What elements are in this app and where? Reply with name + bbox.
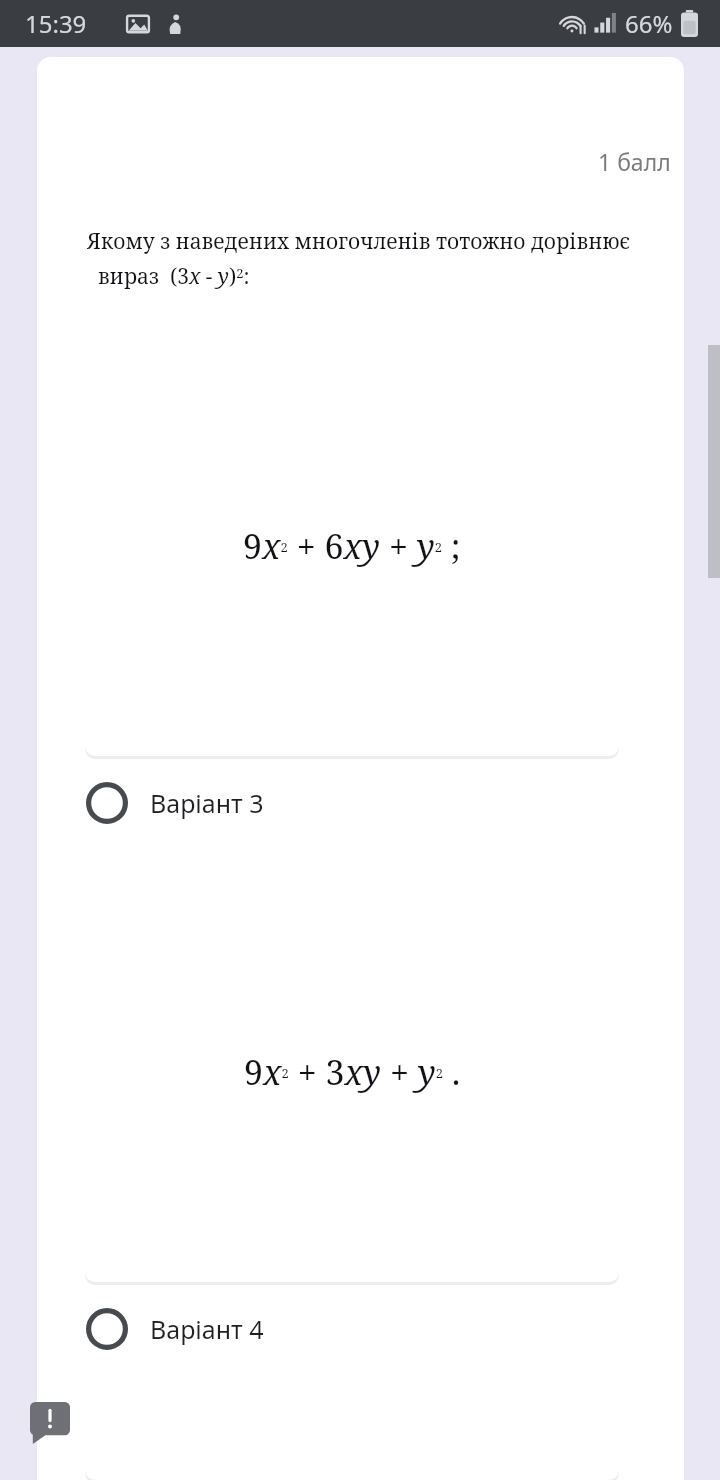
button[interactable]: 9x2 + 3xy + y2 . [85,862,619,1282]
staticText: Варіант 4 [150,1312,264,1346]
staticText: 9x2 + 3xy + y2 . [244,1049,461,1095]
button[interactable]: 9x2 + 6xy + y2 ; [85,335,619,756]
button[interactable]: Report a problem [30,1402,70,1444]
staticText: 9x2 + 6xy + y2 ; [243,523,461,569]
staticText: 66% [625,7,673,40]
staticText: 1 балл [598,146,671,177]
button[interactable]: Варіант 3 [86,772,668,834]
staticText: Варіант 3 [150,786,264,820]
staticText: вираз (3x - y)2: [87,262,250,291]
staticText: Якому з наведених многочленів тотожно до… [87,227,630,256]
button[interactable]: Варіант 4 [86,1298,668,1360]
staticText: 15:39 [25,7,87,40]
